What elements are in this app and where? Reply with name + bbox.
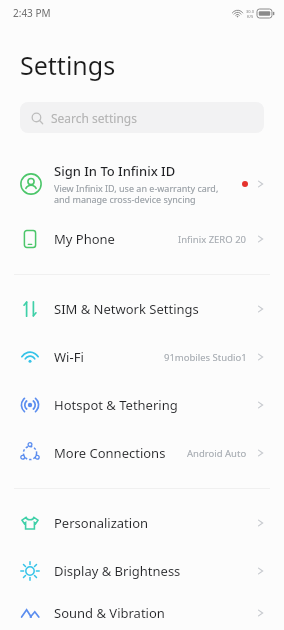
staticText: View Infinix ID, use an e-warranty card,… bbox=[54, 182, 236, 206]
staticText: Wi-Fi bbox=[54, 348, 164, 366]
button[interactable]: Hotspot & Tethering bbox=[0, 381, 284, 429]
staticText: Settings bbox=[20, 48, 116, 82]
staticText: Sign In To Infinix ID bbox=[54, 162, 176, 180]
button[interactable]: Sound & Vibration bbox=[0, 595, 284, 630]
button[interactable]: More Connections bbox=[0, 429, 284, 477]
button[interactable]: SIM & Network Settings bbox=[0, 285, 284, 333]
staticText: Sound & Vibration bbox=[54, 604, 253, 622]
button[interactable]: Wi-Fi bbox=[0, 333, 284, 381]
staticText: 2:43 PM bbox=[13, 6, 51, 20]
staticText: Search settings bbox=[51, 110, 137, 126]
staticText: K/S bbox=[247, 14, 254, 19]
button[interactable]: Sign In To Infinix ID bbox=[0, 153, 284, 215]
staticText: My Phone bbox=[54, 230, 178, 248]
staticText: Hotspot & Tethering bbox=[54, 396, 253, 414]
staticText: 30.0 bbox=[246, 9, 254, 14]
staticText: More Connections bbox=[54, 444, 187, 462]
staticText: Display & Brightness bbox=[54, 562, 253, 580]
staticText: 91mobiles Studio1 bbox=[164, 351, 247, 364]
staticText: Infinix ZERO 20 bbox=[178, 233, 247, 246]
staticText: Personalization bbox=[54, 514, 253, 532]
staticText: SIM & Network Settings bbox=[54, 300, 253, 318]
button[interactable]: Display & Brightness bbox=[0, 547, 284, 595]
button[interactable]: My Phone bbox=[0, 215, 284, 263]
staticText: Android Auto bbox=[187, 447, 247, 460]
button[interactable]: Personalization bbox=[0, 499, 284, 547]
button[interactable]: Search settings bbox=[20, 102, 264, 133]
